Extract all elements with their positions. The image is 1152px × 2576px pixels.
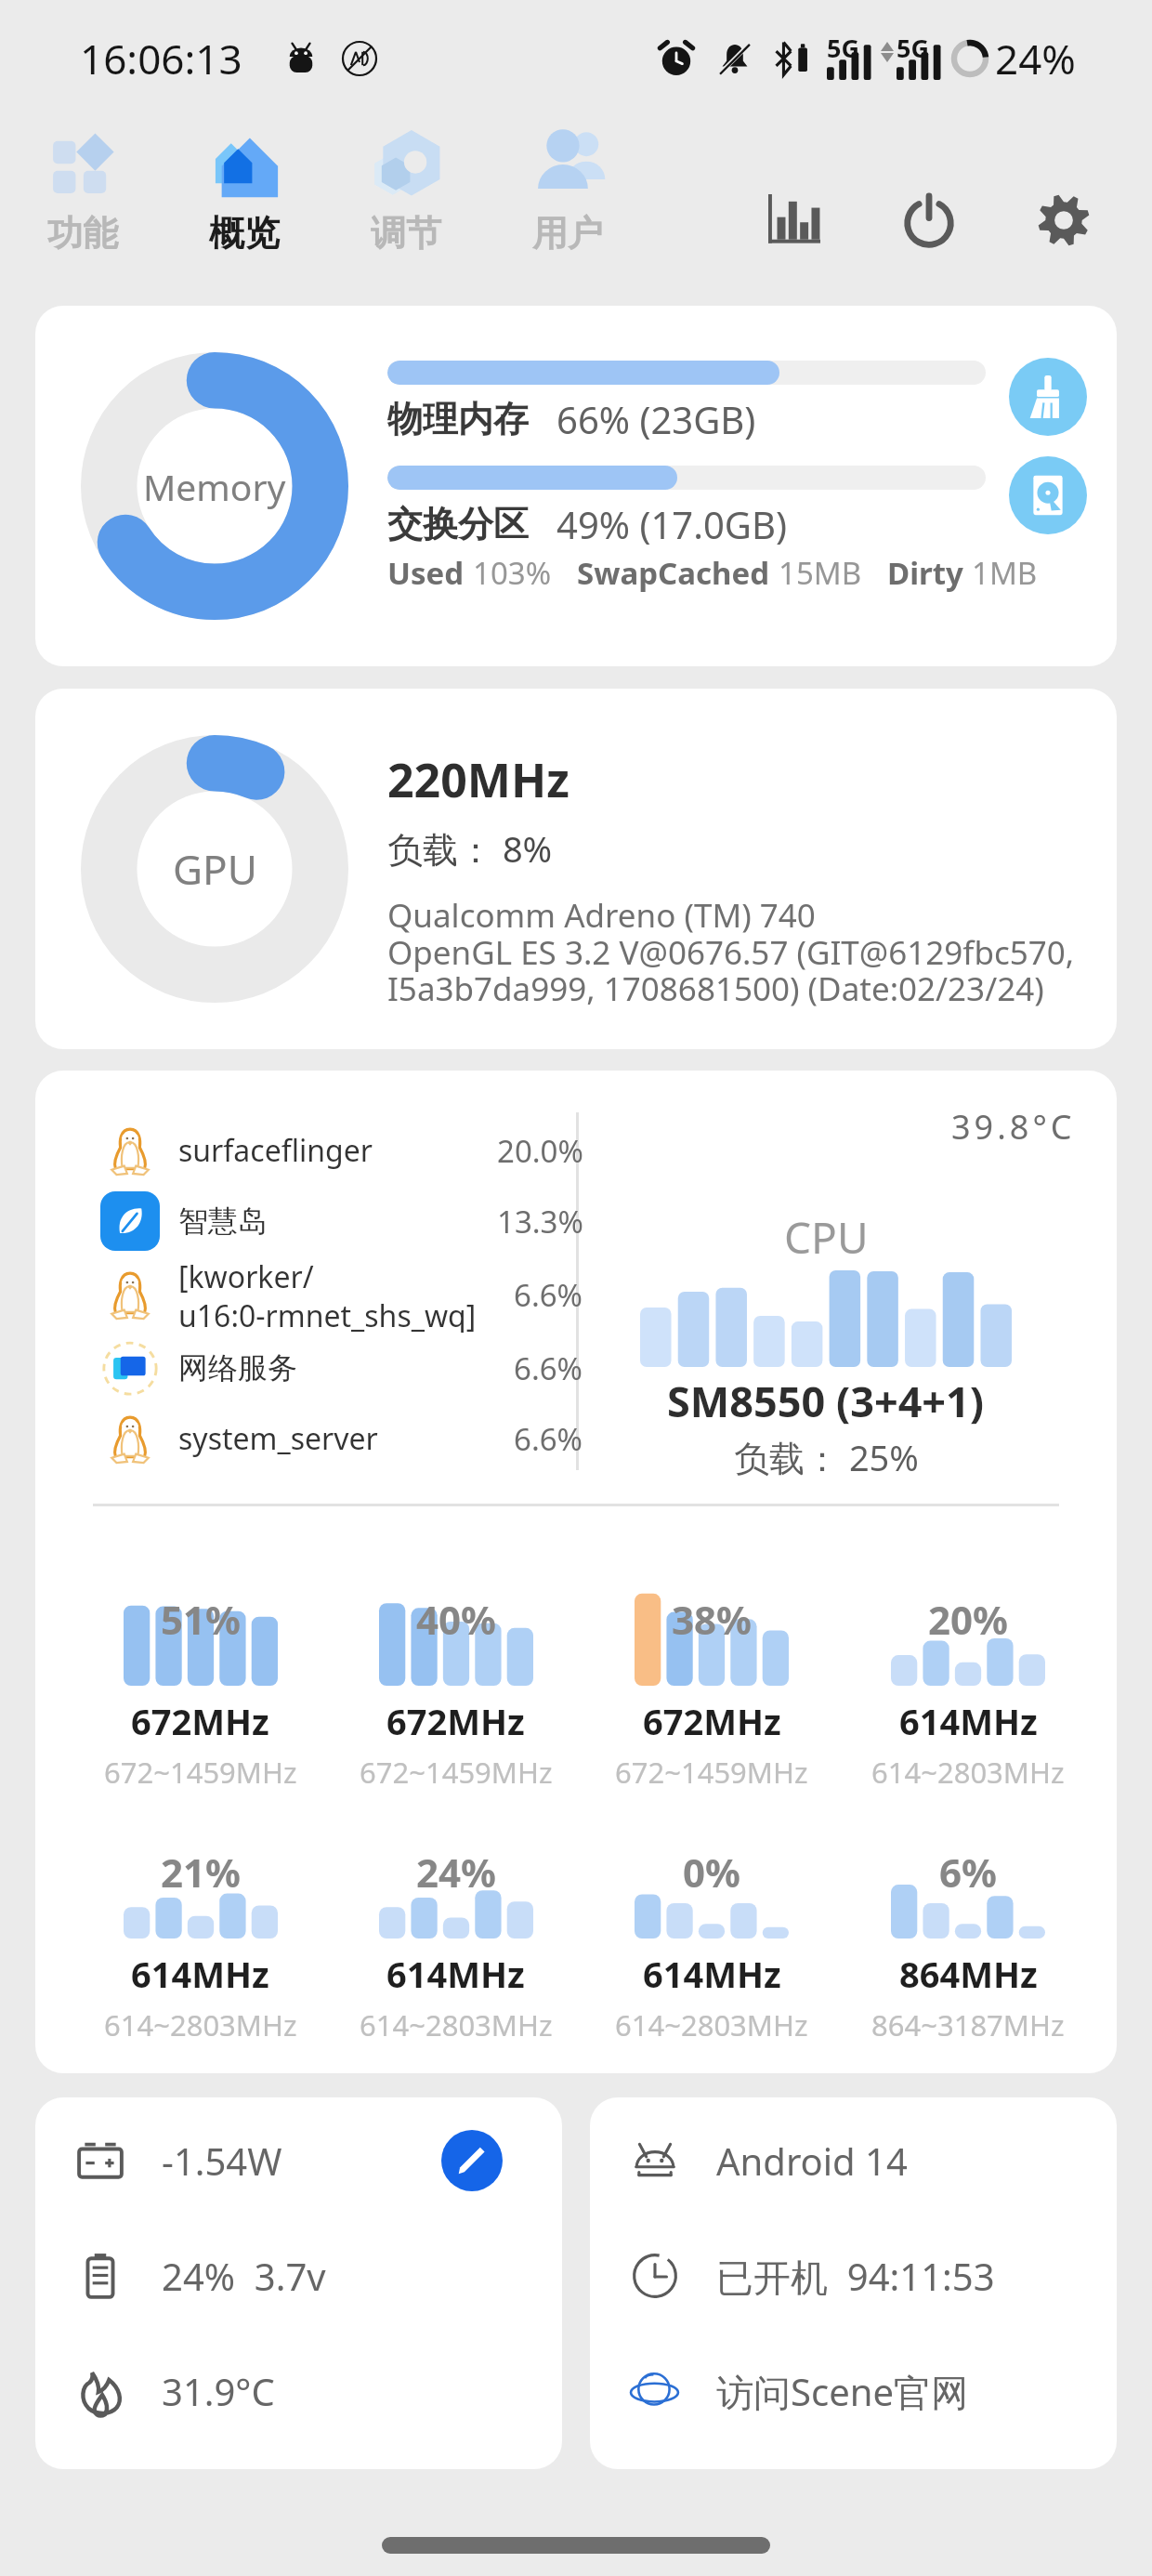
staticText: 功能 [47,211,118,256]
staticText: 614MHz [643,1950,781,1998]
button[interactable]: 24% 3.7v [74,2218,562,2333]
staticText: 24% 3.7v [162,2251,326,2301]
staticText: 614~2803MHz [360,2005,553,2044]
staticText: 概览 [209,211,280,256]
staticText: 614~2803MHz [871,1753,1065,1792]
staticText: 614MHz [899,1697,1038,1745]
staticText: 5G [827,31,859,65]
button[interactable]: 31.9°C [74,2333,562,2449]
button[interactable]: Edit [441,2130,503,2191]
staticText: SM8550 (3+4+1) [667,1373,985,1429]
staticText: 访问Scene官网 [716,2366,968,2417]
staticText: 864~3187MHz [871,2005,1065,2044]
staticText: Android 14 [716,2136,908,2186]
button[interactable]: 调节 [325,122,487,259]
staticText: SwapCached [577,552,770,594]
button[interactable]: 用户 [487,122,648,259]
button[interactable]: [kworker/ u16:0-rmnet_shs_wq] [98,1256,583,1333]
staticText: 66% (23GB) [556,394,756,444]
button[interactable]: surfaceflinger [98,1115,583,1186]
staticText: 0% [683,1846,740,1899]
staticText: 负载： 25% [734,1433,919,1481]
button[interactable]: -1.54W [74,2103,562,2218]
staticText: 负载： 8% [387,824,553,873]
button[interactable]: Storage [1009,456,1087,534]
staticText: 672MHz [386,1697,525,1745]
staticText: 614MHz [131,1950,269,1998]
button[interactable]: 智慧岛 [98,1186,583,1256]
button[interactable]: Settings [996,173,1131,267]
staticText: 672~1459MHz [615,1753,808,1792]
button[interactable]: Android 14 [629,2103,1117,2218]
button[interactable]: system_server [98,1403,583,1474]
staticText: 672MHz [131,1697,269,1745]
button[interactable]: 已开机 94:11:53 [629,2218,1117,2333]
button[interactable]: Power [861,173,996,267]
staticText: 13.3% [497,1201,583,1242]
staticText: 864MHz [899,1950,1038,1998]
staticText: 6.6% [514,1274,583,1316]
staticText: 6.6% [514,1347,583,1389]
staticText: 614MHz [386,1950,525,1998]
staticText: [kworker/ u16:0-rmnet_shs_wq] [178,1256,477,1333]
staticText: 调节 [371,211,441,256]
staticText: 39.8°C [951,1104,1076,1150]
button[interactable]: 功能 [2,122,164,259]
staticText: 智慧岛 [178,1203,268,1240]
button[interactable]: 网络服务 [98,1333,583,1403]
staticText: 31.9°C [162,2366,275,2416]
staticText: 24% [416,1846,496,1899]
staticText: 20% [928,1593,1008,1646]
staticText: 15MB [779,552,862,594]
staticText: 用户 [532,211,603,256]
staticText: 16:06:13 [80,31,242,86]
staticText: surfaceflinger [178,1130,373,1171]
staticText: 交换分区 [387,502,529,546]
staticText: 20.0% [497,1130,583,1172]
staticText: 已开机 94:11:53 [716,2251,995,2302]
staticText: 38% [672,1593,752,1646]
staticText: 103% [473,552,552,594]
staticText: 220MHz [387,748,569,811]
button[interactable]: 访问Scene官网 [629,2333,1117,2449]
staticText: CPU [784,1208,869,1267]
staticText: 网络服务 [178,1349,297,1387]
staticText: 物理内存 [387,397,529,441]
staticText: Memory [143,462,286,511]
staticText: GPU [173,841,257,897]
staticText: 5G [897,31,929,65]
staticText: Used [387,552,465,594]
staticText: 6.6% [514,1418,583,1460]
staticText: 49% (17.0GB) [556,499,787,549]
staticText: 40% [416,1593,496,1646]
staticText: system_server [178,1418,378,1459]
staticText: 672~1459MHz [104,1753,297,1792]
button[interactable]: Statistics [727,173,861,267]
staticText: Qualcomm Adreno (TM) 740 OpenGL ES 3.2 V… [387,893,1075,1010]
staticText: Dirty [887,552,963,594]
staticText: 614~2803MHz [615,2005,808,2044]
button[interactable]: 概览 [164,122,325,259]
staticText: 672MHz [643,1697,781,1745]
staticText: 21% [161,1846,241,1899]
staticText: 672~1459MHz [360,1753,553,1792]
button[interactable]: Clean memory [1009,358,1087,436]
staticText: 24% [995,31,1076,86]
staticText: 1MB [972,552,1038,594]
staticText: 6% [939,1846,997,1899]
staticText: -1.54W [162,2136,282,2186]
staticText: 51% [161,1593,241,1646]
staticText: 614~2803MHz [104,2005,297,2044]
